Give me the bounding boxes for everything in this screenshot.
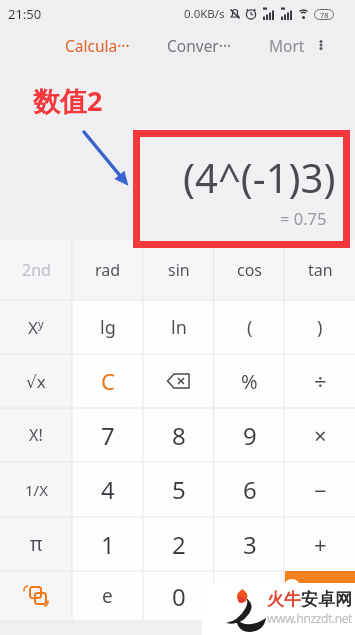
button[interactable]: + bbox=[285, 517, 355, 571]
button[interactable]: Xy bbox=[0, 300, 72, 354]
staticText: 0.0KB/s bbox=[184, 6, 225, 22]
button[interactable]: 5 bbox=[143, 462, 214, 517]
staticText: Xy bbox=[28, 316, 44, 339]
staticText: ( bbox=[247, 315, 253, 340]
staticText: √x bbox=[26, 370, 46, 393]
button[interactable] bbox=[285, 571, 355, 621]
staticText: 6 bbox=[243, 473, 257, 506]
button[interactable]: 4 bbox=[72, 462, 143, 517]
button[interactable]: 0 bbox=[143, 571, 214, 621]
button[interactable]: . bbox=[214, 571, 285, 621]
staticText: 7 bbox=[101, 419, 115, 452]
button[interactable] bbox=[0, 571, 72, 621]
button[interactable]: ÷ bbox=[285, 354, 355, 408]
staticText: cos bbox=[237, 259, 263, 281]
staticText: % bbox=[241, 368, 258, 395]
button[interactable]: 6 bbox=[214, 462, 285, 517]
button[interactable]: Conver··· bbox=[167, 35, 232, 56]
button[interactable]: π bbox=[0, 517, 72, 571]
button[interactable]: 7 bbox=[72, 408, 143, 462]
staticText: lg bbox=[100, 315, 116, 340]
button[interactable]: sin bbox=[143, 240, 214, 300]
staticText: × bbox=[314, 420, 327, 450]
staticText: 8 bbox=[172, 419, 186, 452]
staticText: sin bbox=[168, 259, 190, 281]
staticText: 数值2 bbox=[33, 82, 103, 119]
staticText: 5 bbox=[172, 473, 186, 506]
button[interactable]: ln bbox=[143, 300, 214, 354]
button[interactable]: ) bbox=[285, 300, 355, 354]
staticText: + bbox=[314, 529, 327, 559]
button[interactable]: X! bbox=[0, 408, 72, 462]
staticText: www.hnzzdt.net bbox=[267, 610, 352, 626]
staticText: C bbox=[101, 366, 115, 396]
staticText: 0 bbox=[172, 580, 186, 613]
button[interactable]: Calcula··· bbox=[65, 35, 130, 56]
staticText: 1/X bbox=[25, 480, 48, 500]
staticText: ) bbox=[317, 315, 323, 340]
button[interactable]: ( bbox=[214, 300, 285, 354]
staticText: − bbox=[314, 475, 327, 505]
staticText: 21:50 bbox=[8, 5, 42, 23]
staticText: e bbox=[102, 583, 113, 609]
button[interactable]: cos bbox=[214, 240, 285, 300]
staticText: = 0.75 bbox=[280, 207, 327, 229]
button[interactable] bbox=[143, 354, 214, 408]
staticText: 1 bbox=[101, 528, 115, 561]
button[interactable]: 8 bbox=[143, 408, 214, 462]
button[interactable]: 2nd bbox=[0, 240, 72, 300]
button[interactable]: 3 bbox=[214, 517, 285, 571]
staticText: 4 bbox=[101, 473, 115, 506]
staticText: ln bbox=[171, 315, 187, 340]
staticText: tan bbox=[308, 259, 333, 281]
staticText: rad bbox=[95, 259, 121, 281]
button[interactable]: − bbox=[285, 462, 355, 517]
button[interactable]: lg bbox=[72, 300, 143, 354]
staticText: 3 bbox=[243, 528, 257, 561]
button[interactable]: × bbox=[285, 408, 355, 462]
button[interactable]: % bbox=[214, 354, 285, 408]
staticText: 2 bbox=[172, 528, 186, 561]
button[interactable]: e bbox=[72, 571, 143, 621]
button[interactable]: tan bbox=[285, 240, 355, 300]
button[interactable]: C bbox=[72, 354, 143, 408]
button[interactable]: 1 bbox=[72, 517, 143, 571]
button[interactable]: 2 bbox=[143, 517, 214, 571]
button[interactable] bbox=[316, 40, 326, 50]
staticText: 火牛 bbox=[267, 589, 301, 610]
staticText: (4^(-1)3) bbox=[183, 150, 336, 204]
staticText: 9 bbox=[243, 419, 257, 452]
staticText: 2nd bbox=[22, 259, 51, 281]
staticText: X! bbox=[29, 424, 43, 446]
staticText: ÷ bbox=[314, 366, 327, 396]
button[interactable]: 9 bbox=[214, 408, 285, 462]
button[interactable]: Mort bbox=[269, 35, 305, 56]
staticText: π bbox=[30, 531, 43, 557]
button[interactable]: rad bbox=[72, 240, 143, 300]
staticText: 安卓网 bbox=[301, 589, 352, 610]
button[interactable]: √x bbox=[0, 354, 72, 408]
button[interactable]: 1/X bbox=[0, 462, 72, 517]
staticText: 78 bbox=[320, 10, 329, 20]
staticText: . bbox=[246, 580, 253, 613]
